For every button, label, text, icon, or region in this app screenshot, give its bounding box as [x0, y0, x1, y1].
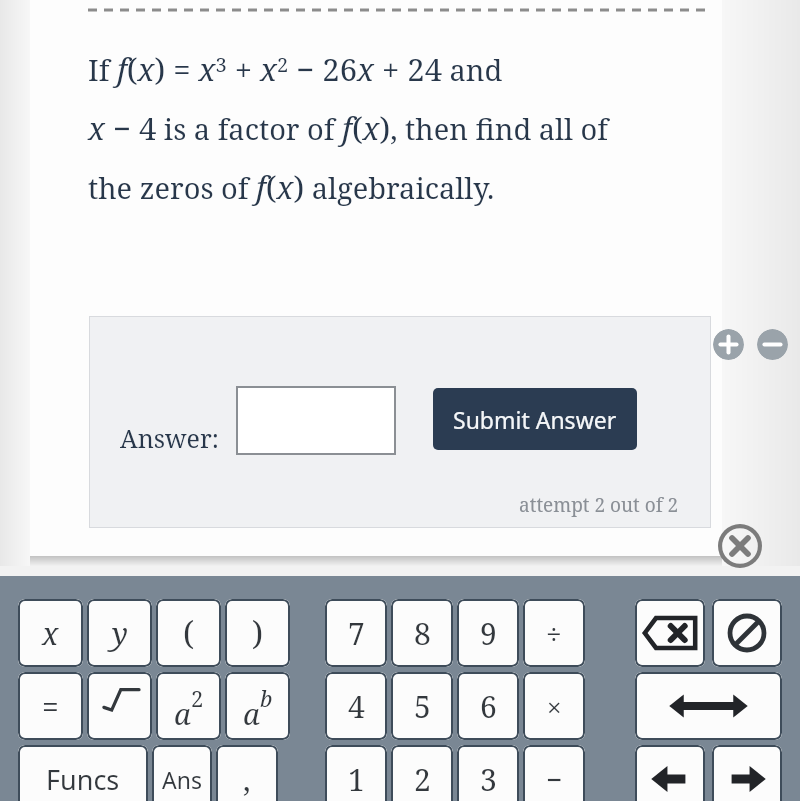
staticText: Answer:	[120, 421, 219, 455]
button[interactable]: −	[523, 745, 585, 801]
button[interactable]: 5	[391, 672, 453, 740]
button[interactable]: 1	[325, 745, 387, 801]
button[interactable]: Ans	[152, 745, 212, 801]
staticText: ×	[547, 689, 562, 724]
staticText: 9	[480, 613, 497, 654]
staticText: (	[183, 611, 195, 655]
staticText: 2	[191, 683, 204, 713]
button[interactable]: 9	[457, 599, 519, 667]
button[interactable]: ÷	[523, 599, 585, 667]
button[interactable]: 3	[457, 745, 519, 801]
button[interactable]: Close	[718, 524, 762, 568]
staticText: y	[112, 613, 128, 654]
staticText: ,	[243, 759, 251, 800]
staticText: attempt 2 out of 2	[519, 492, 679, 518]
button[interactable]: Submit Answer	[433, 388, 637, 450]
button[interactable]: Zoom in	[713, 329, 744, 360]
button[interactable]: Zoom out	[757, 329, 788, 360]
staticText: 2	[414, 759, 431, 800]
staticText: b	[260, 683, 273, 713]
button[interactable]: 2	[391, 745, 453, 801]
staticText: )	[252, 611, 264, 655]
button[interactable]	[87, 672, 152, 740]
staticText: Submit Answer	[453, 404, 617, 435]
button[interactable]: 7	[325, 599, 387, 667]
staticText: If f(x) = x3 + x2 − 26x + 24 and	[88, 48, 503, 90]
button[interactable]: Move cursor	[635, 672, 782, 740]
button[interactable]: ,	[216, 745, 278, 801]
button[interactable]: x	[18, 599, 83, 667]
staticText: −	[546, 760, 563, 798]
staticText: x − 4 is a factor of f(x), then find all…	[88, 107, 609, 149]
button[interactable]: 6	[457, 672, 519, 740]
staticText: x	[42, 613, 59, 654]
staticText: 5	[414, 686, 431, 727]
button[interactable]: 4	[325, 672, 387, 740]
staticText: Funcs	[46, 761, 120, 798]
button[interactable]: ×	[523, 672, 585, 740]
button[interactable]: Backspace	[635, 599, 705, 667]
staticText: the zeros of f(x) algebraically.	[88, 166, 495, 208]
button[interactable]: Clear	[712, 599, 782, 667]
staticText: 4	[348, 686, 365, 727]
staticText: Ans	[162, 764, 202, 795]
button[interactable]: Cursor right	[712, 745, 782, 801]
staticText: a	[174, 694, 191, 733]
staticText: 8	[414, 613, 431, 654]
button[interactable]: a	[156, 672, 221, 740]
button[interactable]: 8	[391, 599, 453, 667]
button[interactable]: =	[18, 672, 83, 740]
staticText: =	[42, 686, 59, 727]
button[interactable]: Answer input	[236, 386, 396, 455]
staticText: ÷	[546, 614, 562, 652]
button[interactable]: y	[87, 599, 152, 667]
staticText: 6	[480, 686, 497, 727]
button[interactable]: )	[225, 599, 290, 667]
staticText: 7	[348, 613, 365, 654]
button[interactable]: a	[225, 672, 290, 740]
staticText: a	[243, 694, 260, 733]
button[interactable]: (	[156, 599, 221, 667]
button[interactable]: Cursor left	[635, 745, 705, 801]
button[interactable]: Funcs	[18, 745, 148, 801]
staticText: 3	[480, 759, 497, 800]
staticText: 1	[348, 759, 365, 800]
